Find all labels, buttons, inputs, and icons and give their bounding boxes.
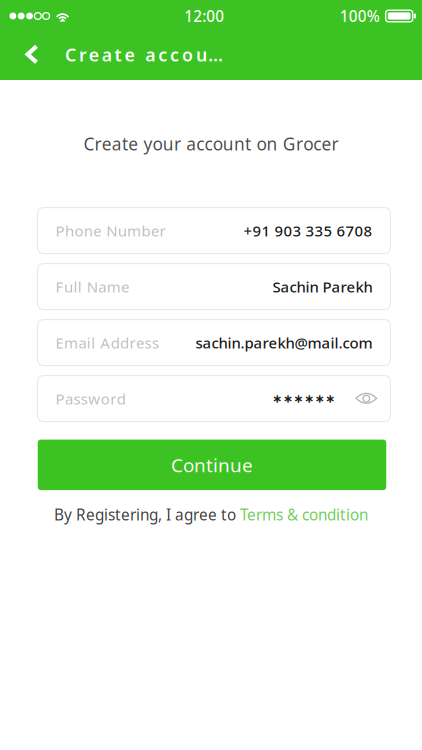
button[interactable]: Show password — [355, 392, 377, 405]
staticText: +91 903 335 6708 — [243, 220, 372, 241]
staticText: By Registering, I agree to — [54, 504, 240, 525]
staticText: Password — [55, 388, 126, 409]
staticText: Terms & condition — [240, 504, 368, 525]
staticText: Phone Number — [55, 220, 165, 241]
button[interactable]: Continue — [38, 440, 386, 490]
staticText: ∗ — [272, 392, 282, 406]
staticText: Email Address — [55, 332, 159, 353]
button[interactable]: Back — [14, 32, 50, 76]
staticText: 12:00 — [184, 6, 224, 26]
staticText: Sachin Parekh — [272, 276, 372, 297]
staticText: ∗ — [283, 392, 293, 406]
staticText: Full Name — [55, 276, 129, 297]
staticText: 100% — [340, 6, 380, 26]
staticText: sachin.parekh@mail.com — [195, 332, 372, 353]
staticText: Create account — [65, 42, 231, 67]
staticText: Continue — [171, 452, 253, 478]
button[interactable]: Terms & condition — [240, 504, 368, 525]
staticText: ∗ — [314, 392, 324, 406]
staticText: ∗ — [304, 392, 314, 406]
staticText: Create your account on Grocer — [83, 132, 339, 156]
staticText: ∗ — [293, 392, 303, 406]
staticText: ∗ — [325, 392, 335, 406]
